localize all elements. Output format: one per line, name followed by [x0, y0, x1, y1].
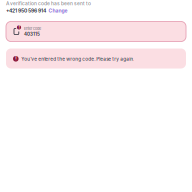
staticText: !: [18, 25, 19, 30]
staticText: !: [15, 56, 16, 61]
staticText: Enter code: [24, 26, 41, 31]
staticText: +421 950 596 914: [6, 7, 46, 14]
staticText: You've entered the wrong code. Please tr…: [21, 56, 134, 62]
button[interactable]: !: [6, 21, 186, 41]
staticText: Change: [48, 7, 67, 14]
button[interactable]: Change: [48, 7, 67, 14]
staticText: 403115: [24, 31, 40, 37]
staticText: A verification code has been sent to: [6, 0, 91, 6]
